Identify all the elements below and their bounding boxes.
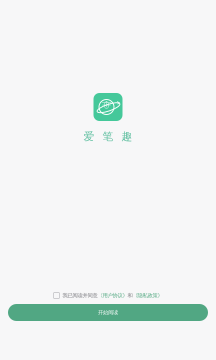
staticText: 开始阅读 [98, 309, 118, 316]
staticText: 爱笔趣 [83, 130, 132, 143]
staticText: 《隐私政策》 [132, 292, 162, 299]
staticText: 我已阅读并同意 [62, 292, 97, 299]
button[interactable]: 我已阅读并同意 [53, 290, 162, 301]
staticText: 和 [127, 292, 132, 299]
button[interactable]: 开始阅读 [8, 304, 208, 321]
staticText: 《用户协议》 [97, 292, 127, 299]
